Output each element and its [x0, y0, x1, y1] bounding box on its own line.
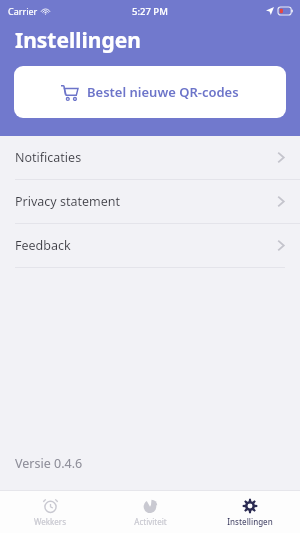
button[interactable]: Notificaties — [0, 136, 300, 179]
staticText: Activiteit — [134, 516, 167, 527]
staticText: Wekkers — [34, 516, 66, 527]
staticText: Privacy statement — [15, 193, 120, 210]
staticText: Bestel nieuwe QR-codes — [87, 83, 239, 101]
staticText: Versie 0.4.6 — [15, 455, 83, 472]
staticText: 5:27 PM — [132, 5, 168, 18]
button[interactable]: Privacy statement — [0, 180, 300, 223]
button[interactable]: Instellingen — [200, 491, 300, 533]
staticText: Notificaties — [15, 149, 82, 166]
staticText: Carrier — [8, 5, 38, 17]
button[interactable]: Activiteit — [100, 491, 200, 533]
button[interactable]: Feedback — [0, 224, 300, 267]
staticText: Feedback — [15, 237, 71, 254]
staticText: Instellingen — [227, 516, 273, 527]
button[interactable]: Wekkers — [0, 491, 100, 533]
button[interactable]: Bestel nieuwe QR-codes — [14, 66, 286, 118]
other: Instellingen — [242, 498, 258, 514]
staticText: Instellingen — [15, 26, 141, 55]
